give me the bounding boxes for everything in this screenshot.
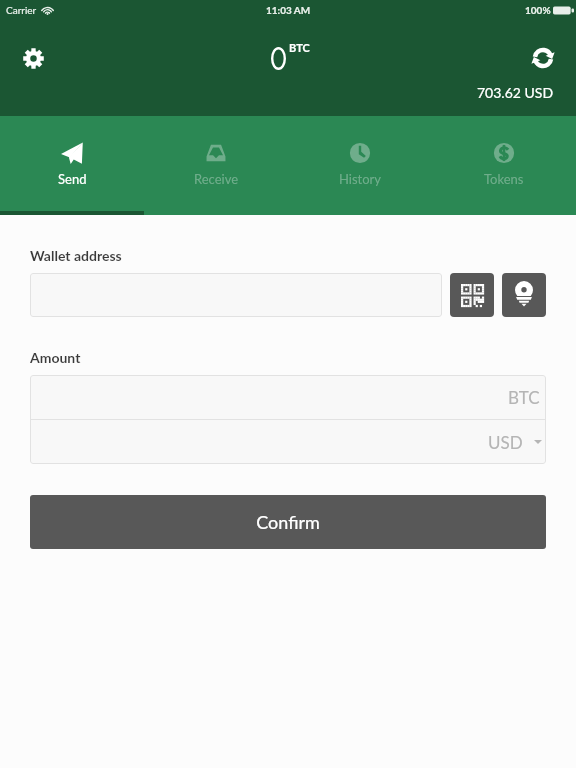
staticText: History [339, 171, 382, 187]
button[interactable]: Settings [13, 38, 53, 78]
button[interactable]: Scan QR code [450, 273, 494, 317]
button[interactable]: Receive [144, 116, 288, 215]
staticText: BTC [289, 41, 310, 54]
staticText: Send [58, 171, 87, 187]
button[interactable]: Confirm [30, 495, 546, 549]
staticText: Confirm [256, 511, 320, 533]
staticText: BTC [508, 387, 540, 407]
button[interactable] [30, 273, 442, 317]
staticText: Wallet address [30, 247, 122, 264]
staticText: 703.62 USD [477, 84, 554, 101]
staticText: 11:03 AM [266, 4, 311, 16]
staticText: Carrier [6, 4, 37, 16]
button[interactable]: USD [30, 420, 546, 464]
button[interactable]: Refresh [523, 38, 563, 78]
staticText: Tokens [484, 171, 524, 187]
staticText: 100% [525, 4, 551, 16]
button[interactable]: Tokens [432, 116, 576, 215]
staticText: Receive [194, 171, 239, 187]
button[interactable]: History [288, 116, 432, 215]
button[interactable]: Address book [502, 273, 546, 317]
button[interactable]: Send [0, 116, 144, 215]
staticText: USD [488, 432, 523, 452]
staticText: Amount [30, 349, 81, 366]
button[interactable]: BTC [30, 375, 546, 419]
